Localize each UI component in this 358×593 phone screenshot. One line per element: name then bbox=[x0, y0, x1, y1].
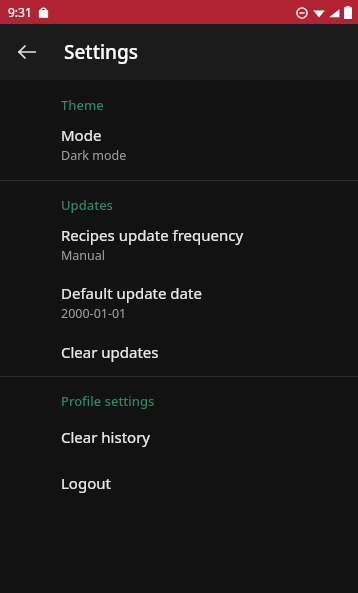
staticText: Recipes update frequency bbox=[61, 225, 244, 245]
staticText: Default update date bbox=[61, 283, 202, 303]
staticText: Updates bbox=[61, 196, 113, 214]
staticText: Settings bbox=[64, 39, 138, 65]
staticText: Profile settings bbox=[61, 392, 155, 410]
staticText: 2000-01-01 bbox=[61, 305, 127, 322]
staticText: Theme bbox=[61, 96, 104, 114]
staticText: Clear updates bbox=[61, 342, 159, 362]
button[interactable]: Clear updates bbox=[0, 322, 358, 362]
button[interactable]: Back bbox=[10, 35, 44, 69]
staticText: Logout bbox=[61, 473, 111, 493]
staticText: Dark mode bbox=[61, 147, 127, 164]
button[interactable]: Mode bbox=[0, 114, 358, 164]
button[interactable]: Logout bbox=[0, 447, 358, 493]
staticText: Mode bbox=[61, 125, 102, 145]
staticText: Clear history bbox=[61, 427, 150, 447]
staticText: 9:31 bbox=[8, 4, 32, 20]
staticText: Manual bbox=[61, 247, 106, 264]
button[interactable]: Recipes update frequency bbox=[0, 214, 358, 264]
button[interactable]: Clear history bbox=[0, 410, 358, 447]
button[interactable]: Default update date bbox=[0, 264, 358, 322]
